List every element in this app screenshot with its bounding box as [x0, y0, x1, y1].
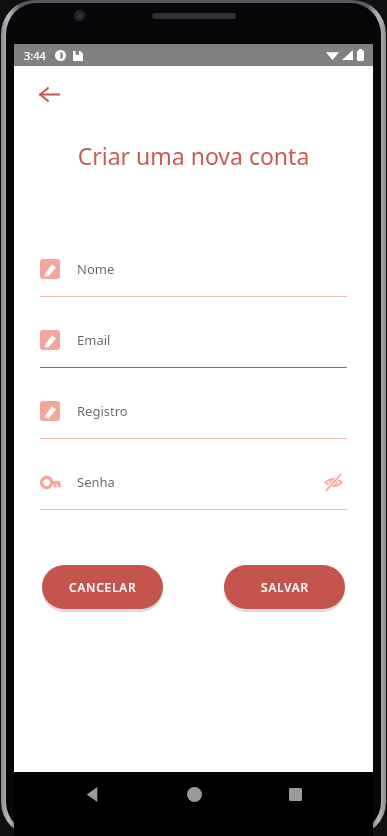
button[interactable]: Senha: [40, 467, 347, 510]
button[interactable]: CANCELAR: [42, 565, 163, 609]
staticText: CANCELAR: [69, 579, 137, 595]
staticText: Senha: [77, 473, 115, 491]
button[interactable]: SALVAR: [224, 565, 345, 609]
button[interactable]: Nome: [40, 254, 347, 297]
staticText: SALVAR: [261, 579, 309, 595]
staticText: Registro: [77, 402, 128, 420]
button[interactable]: Registro: [40, 396, 347, 439]
staticText: Email: [77, 331, 111, 349]
staticText: Nome: [77, 260, 115, 278]
button[interactable]: Recent apps: [272, 772, 318, 816]
staticText: Criar uma nova conta: [14, 140, 373, 171]
button[interactable]: Show password: [319, 468, 347, 496]
button[interactable]: Home: [171, 772, 217, 816]
button[interactable]: Email: [40, 325, 347, 368]
button[interactable]: Back: [32, 77, 66, 111]
button[interactable]: Back: [69, 772, 115, 816]
staticText: 3:44: [24, 48, 46, 63]
